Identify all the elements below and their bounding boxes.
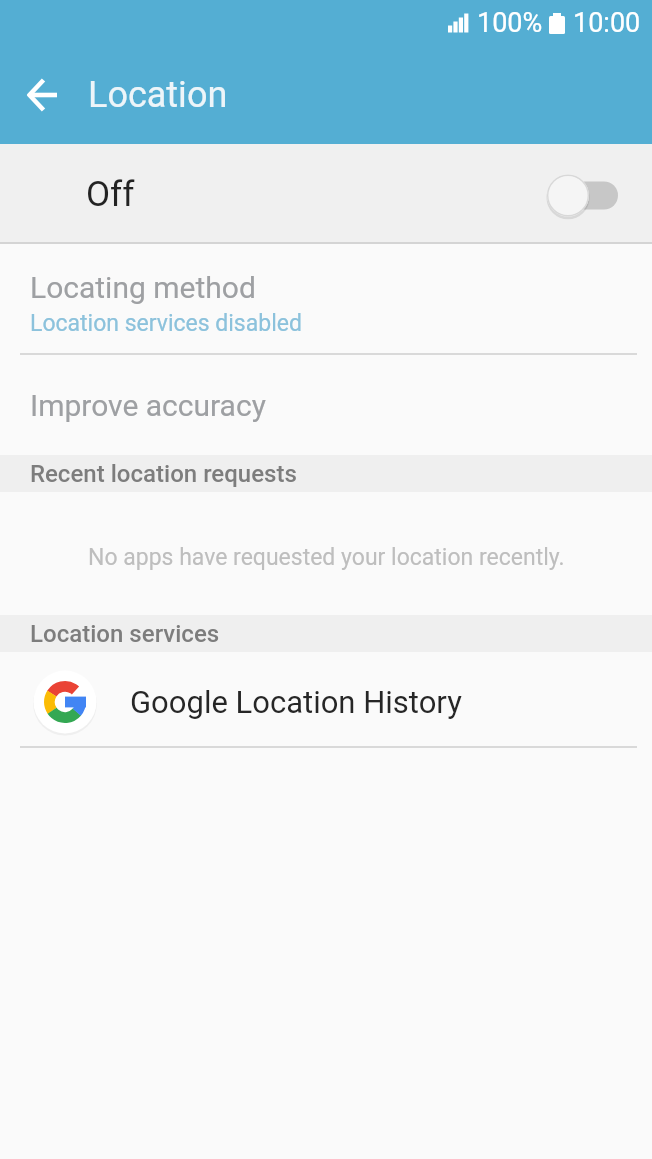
staticText: Improve accuracy [30, 388, 266, 423]
staticText: Locating method [30, 270, 256, 305]
staticText: No apps have requested your location rec… [88, 544, 565, 571]
staticText: Off [86, 174, 135, 215]
staticText: Location services [30, 620, 220, 648]
staticText: Recent location requests [30, 460, 297, 488]
staticText: Location [88, 74, 228, 116]
staticText: 10:00 [573, 7, 641, 39]
staticText: Location services disabled [30, 310, 302, 337]
staticText: 100% [477, 7, 543, 39]
staticText: Google Location History [130, 684, 462, 720]
